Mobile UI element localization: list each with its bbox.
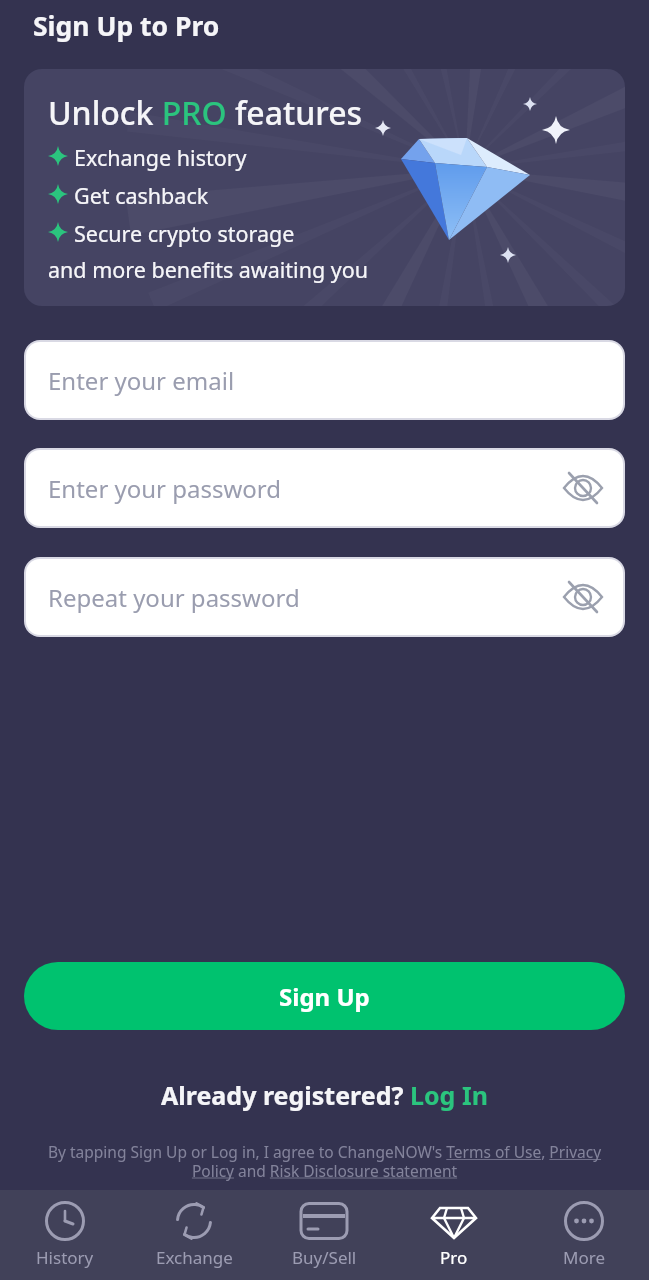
button[interactable]: Buy/Sell: [259, 1190, 389, 1280]
staticText: Repeat your password: [48, 581, 300, 614]
staticText: Unlock PRO features: [48, 91, 363, 135]
staticText: Buy/Sell: [292, 1246, 357, 1269]
button[interactable]: Exchange: [129, 1190, 259, 1280]
staticText: Pro: [440, 1246, 468, 1269]
staticText: By tapping Sign Up or Log in, I agree to…: [40, 1141, 609, 1181]
staticText: Enter your email: [48, 364, 235, 397]
staticText: More: [563, 1246, 605, 1269]
button[interactable]: Pro: [389, 1190, 519, 1280]
staticText: Sign Up: [279, 980, 370, 1013]
staticText: and more benefits awaiting you: [48, 255, 369, 284]
staticText: Sign Up to Pro: [33, 8, 220, 44]
staticText: Secure crypto storage: [74, 219, 295, 248]
staticText: History: [36, 1246, 94, 1269]
staticText: Enter your password: [48, 472, 282, 505]
button[interactable]: History: [0, 1190, 129, 1280]
button[interactable]: Enter your email: [26, 342, 623, 418]
staticText: Get cashback: [74, 181, 209, 210]
button[interactable]: More: [519, 1190, 649, 1280]
staticText: Already registered?: [161, 1078, 410, 1112]
button[interactable]: Log In: [410, 1078, 488, 1112]
button[interactable]: Repeat your password: [26, 559, 623, 635]
button[interactable]: Sign Up: [24, 962, 625, 1030]
staticText: Exchange history: [74, 143, 247, 172]
button[interactable]: Enter your password: [26, 450, 623, 526]
staticText: Exchange: [156, 1246, 233, 1269]
